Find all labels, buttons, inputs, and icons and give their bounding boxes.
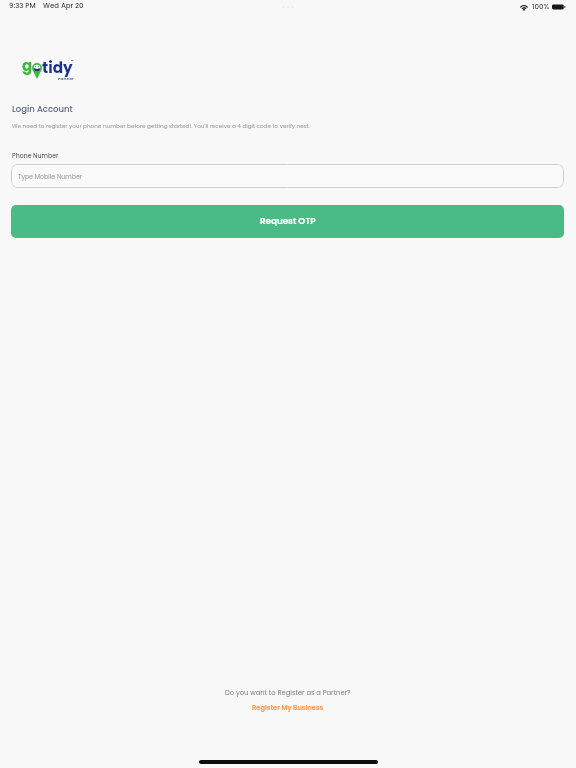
other: Wi-Fi — [519, 3, 529, 11]
other: gotidy Partner logo — [22, 58, 74, 80]
staticText: Register My Business — [252, 703, 324, 712]
staticText: Login Account — [12, 103, 73, 115]
staticText: Request OTP — [260, 215, 316, 227]
staticText: g — [22, 55, 33, 76]
staticText: Phone Number — [12, 151, 59, 160]
other: Battery — [552, 3, 566, 11]
staticText: We need to register your phone number be… — [12, 122, 352, 130]
button[interactable]: Type Mobile Number — [11, 164, 564, 188]
button[interactable]: Register My Business — [242, 702, 334, 715]
staticText: 100% — [532, 2, 549, 12]
staticText: 9:33 PM — [9, 1, 36, 11]
staticText: Do you want to Register as a Partner? — [225, 688, 351, 697]
staticText: Partner — [58, 76, 74, 82]
button[interactable]: Request OTP — [11, 205, 564, 238]
staticText: Wed Apr 20 — [43, 1, 84, 11]
staticText: tidy — [42, 57, 73, 78]
staticText: Type Mobile Number — [18, 172, 83, 181]
